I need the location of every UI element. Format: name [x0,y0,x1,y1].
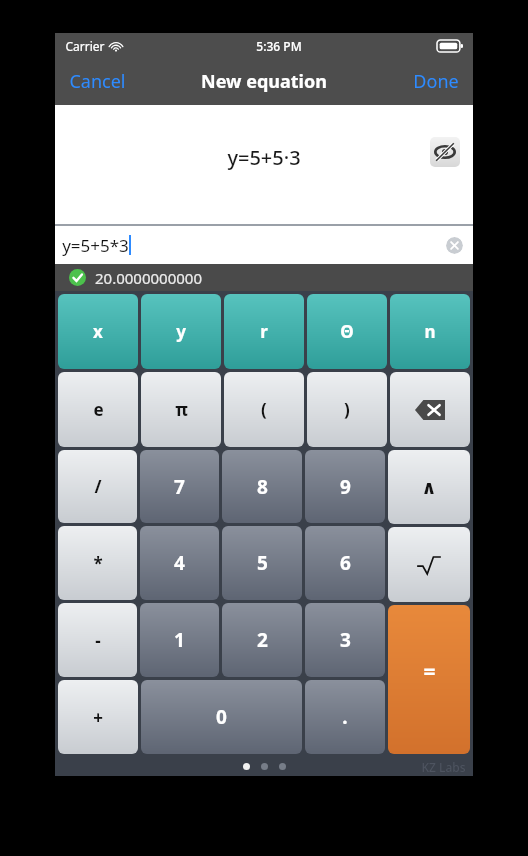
staticText: 2 [257,627,268,653]
button[interactable]: n [390,294,470,369]
button[interactable]: Θ [307,294,387,369]
staticText: x [93,320,103,343]
staticText: r [260,320,268,343]
staticText: * [93,552,103,575]
staticText: Θ [340,320,354,343]
staticText: 1 [174,627,185,653]
staticText: Cancel [69,69,126,94]
staticText: ( [261,398,267,421]
button[interactable]: ) [307,372,387,447]
staticText: ∧ [421,476,437,498]
staticText: π [175,398,188,421]
staticText: Carrier [65,38,105,54]
staticText: New equation [201,69,327,94]
button[interactable]: y [141,294,221,369]
staticText: . [342,704,348,730]
button[interactable]: Toggle visibility [430,137,460,167]
button[interactable]: - [58,603,137,677]
button[interactable]: Clear text [446,237,463,254]
staticText: 3 [340,627,351,653]
button[interactable]: r [224,294,304,369]
button[interactable]: Power [388,450,470,524]
button[interactable]: 5 [222,526,302,600]
button[interactable]: 9 [305,450,385,523]
staticText: 6 [340,550,351,576]
button[interactable]: Done [405,63,467,100]
button[interactable]: 4 [140,526,219,600]
button[interactable]: π [141,372,221,447]
button[interactable]: ( [224,372,304,447]
staticText: 5 [257,550,268,576]
staticText: 8 [257,474,268,500]
staticText: Done [413,69,459,94]
staticText: y=5+5*3 [62,234,129,257]
staticText: 9 [340,474,351,500]
staticText: ) [344,398,350,421]
button[interactable]: 1 [140,603,219,677]
button[interactable]: Backspace [390,372,470,447]
button[interactable]: 2 [222,603,302,677]
staticText: - [95,629,101,652]
button[interactable]: 0 [141,680,302,754]
button[interactable]: 6 [305,526,385,600]
button[interactable]: 3 [305,603,385,677]
staticText: KZ Labs [421,759,466,775]
button[interactable]: Cancel [61,63,134,100]
staticText: 5:36 PM [256,38,302,54]
button[interactable]: 8 [222,450,302,523]
button[interactable]: x [58,294,138,369]
button[interactable]: e [58,372,138,447]
staticText: 20.0000000000 [95,268,202,288]
staticText: + [93,706,103,729]
button[interactable]: + [58,680,138,754]
staticText: y [176,320,186,343]
staticText: / [94,475,102,498]
staticText: y=5+5·3 [227,144,301,171]
staticText: 4 [174,550,185,576]
staticText: n [424,320,436,343]
button[interactable]: Square root [388,527,470,602]
staticText: 0 [216,704,227,730]
button[interactable]: * [58,526,137,600]
button[interactable]: / [58,450,137,523]
button[interactable]: = [388,605,470,754]
staticText: 7 [174,474,185,500]
staticText: = [423,657,436,686]
staticText: e [93,398,104,421]
button[interactable]: . [305,680,385,754]
button[interactable]: 7 [140,450,219,523]
